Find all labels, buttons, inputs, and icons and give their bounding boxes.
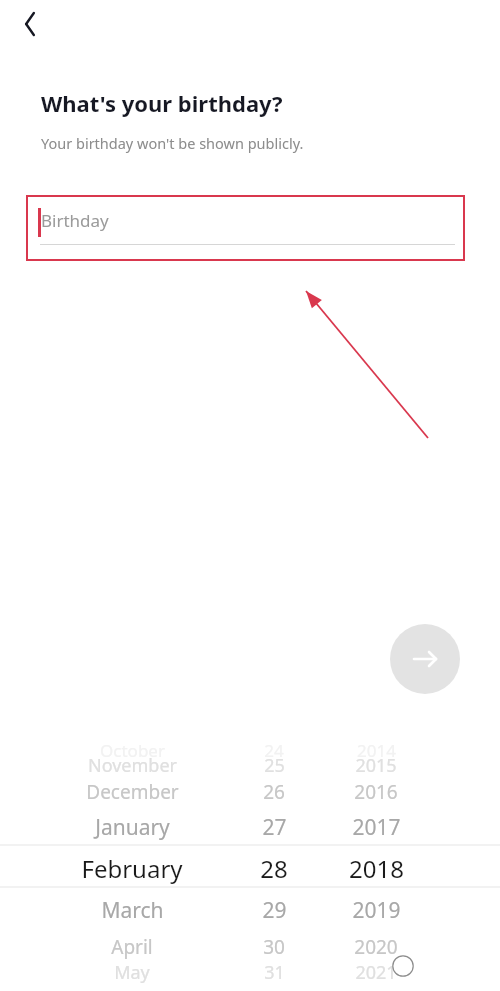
staticText: 25 bbox=[264, 753, 285, 778]
staticText: 2016 bbox=[354, 779, 398, 805]
button[interactable]: Next bbox=[390, 624, 460, 694]
staticText: What's your birthday? bbox=[41, 88, 283, 118]
staticText: Your birthday won't be shown publicly. bbox=[41, 133, 304, 153]
staticText: May bbox=[114, 960, 150, 985]
button[interactable]: Back bbox=[8, 2, 52, 46]
staticText: March bbox=[101, 896, 164, 925]
staticText: 31 bbox=[264, 960, 285, 985]
staticText: 24 bbox=[264, 739, 284, 762]
staticText: February bbox=[81, 852, 183, 885]
staticText: 26 bbox=[263, 779, 285, 805]
staticText: 28 bbox=[260, 852, 288, 885]
staticText: October bbox=[100, 739, 165, 762]
staticText: November bbox=[88, 753, 177, 778]
staticText: 2014 bbox=[357, 739, 396, 762]
staticText: January bbox=[95, 813, 170, 842]
staticText: December bbox=[86, 779, 179, 805]
staticText: Birthday bbox=[41, 209, 109, 232]
staticText: 2021 bbox=[355, 960, 397, 985]
staticText: 30 bbox=[263, 934, 285, 960]
staticText: 2015 bbox=[355, 753, 397, 778]
staticText: 29 bbox=[262, 896, 287, 925]
staticText: April bbox=[111, 934, 153, 960]
staticText: 2019 bbox=[352, 896, 401, 925]
staticText: 2020 bbox=[354, 934, 398, 960]
button[interactable]: October bbox=[0, 735, 500, 991]
button[interactable]: Birthday bbox=[27, 196, 464, 260]
staticText: 2017 bbox=[352, 813, 401, 842]
staticText: 27 bbox=[262, 813, 287, 842]
staticText: 2018 bbox=[349, 852, 404, 885]
